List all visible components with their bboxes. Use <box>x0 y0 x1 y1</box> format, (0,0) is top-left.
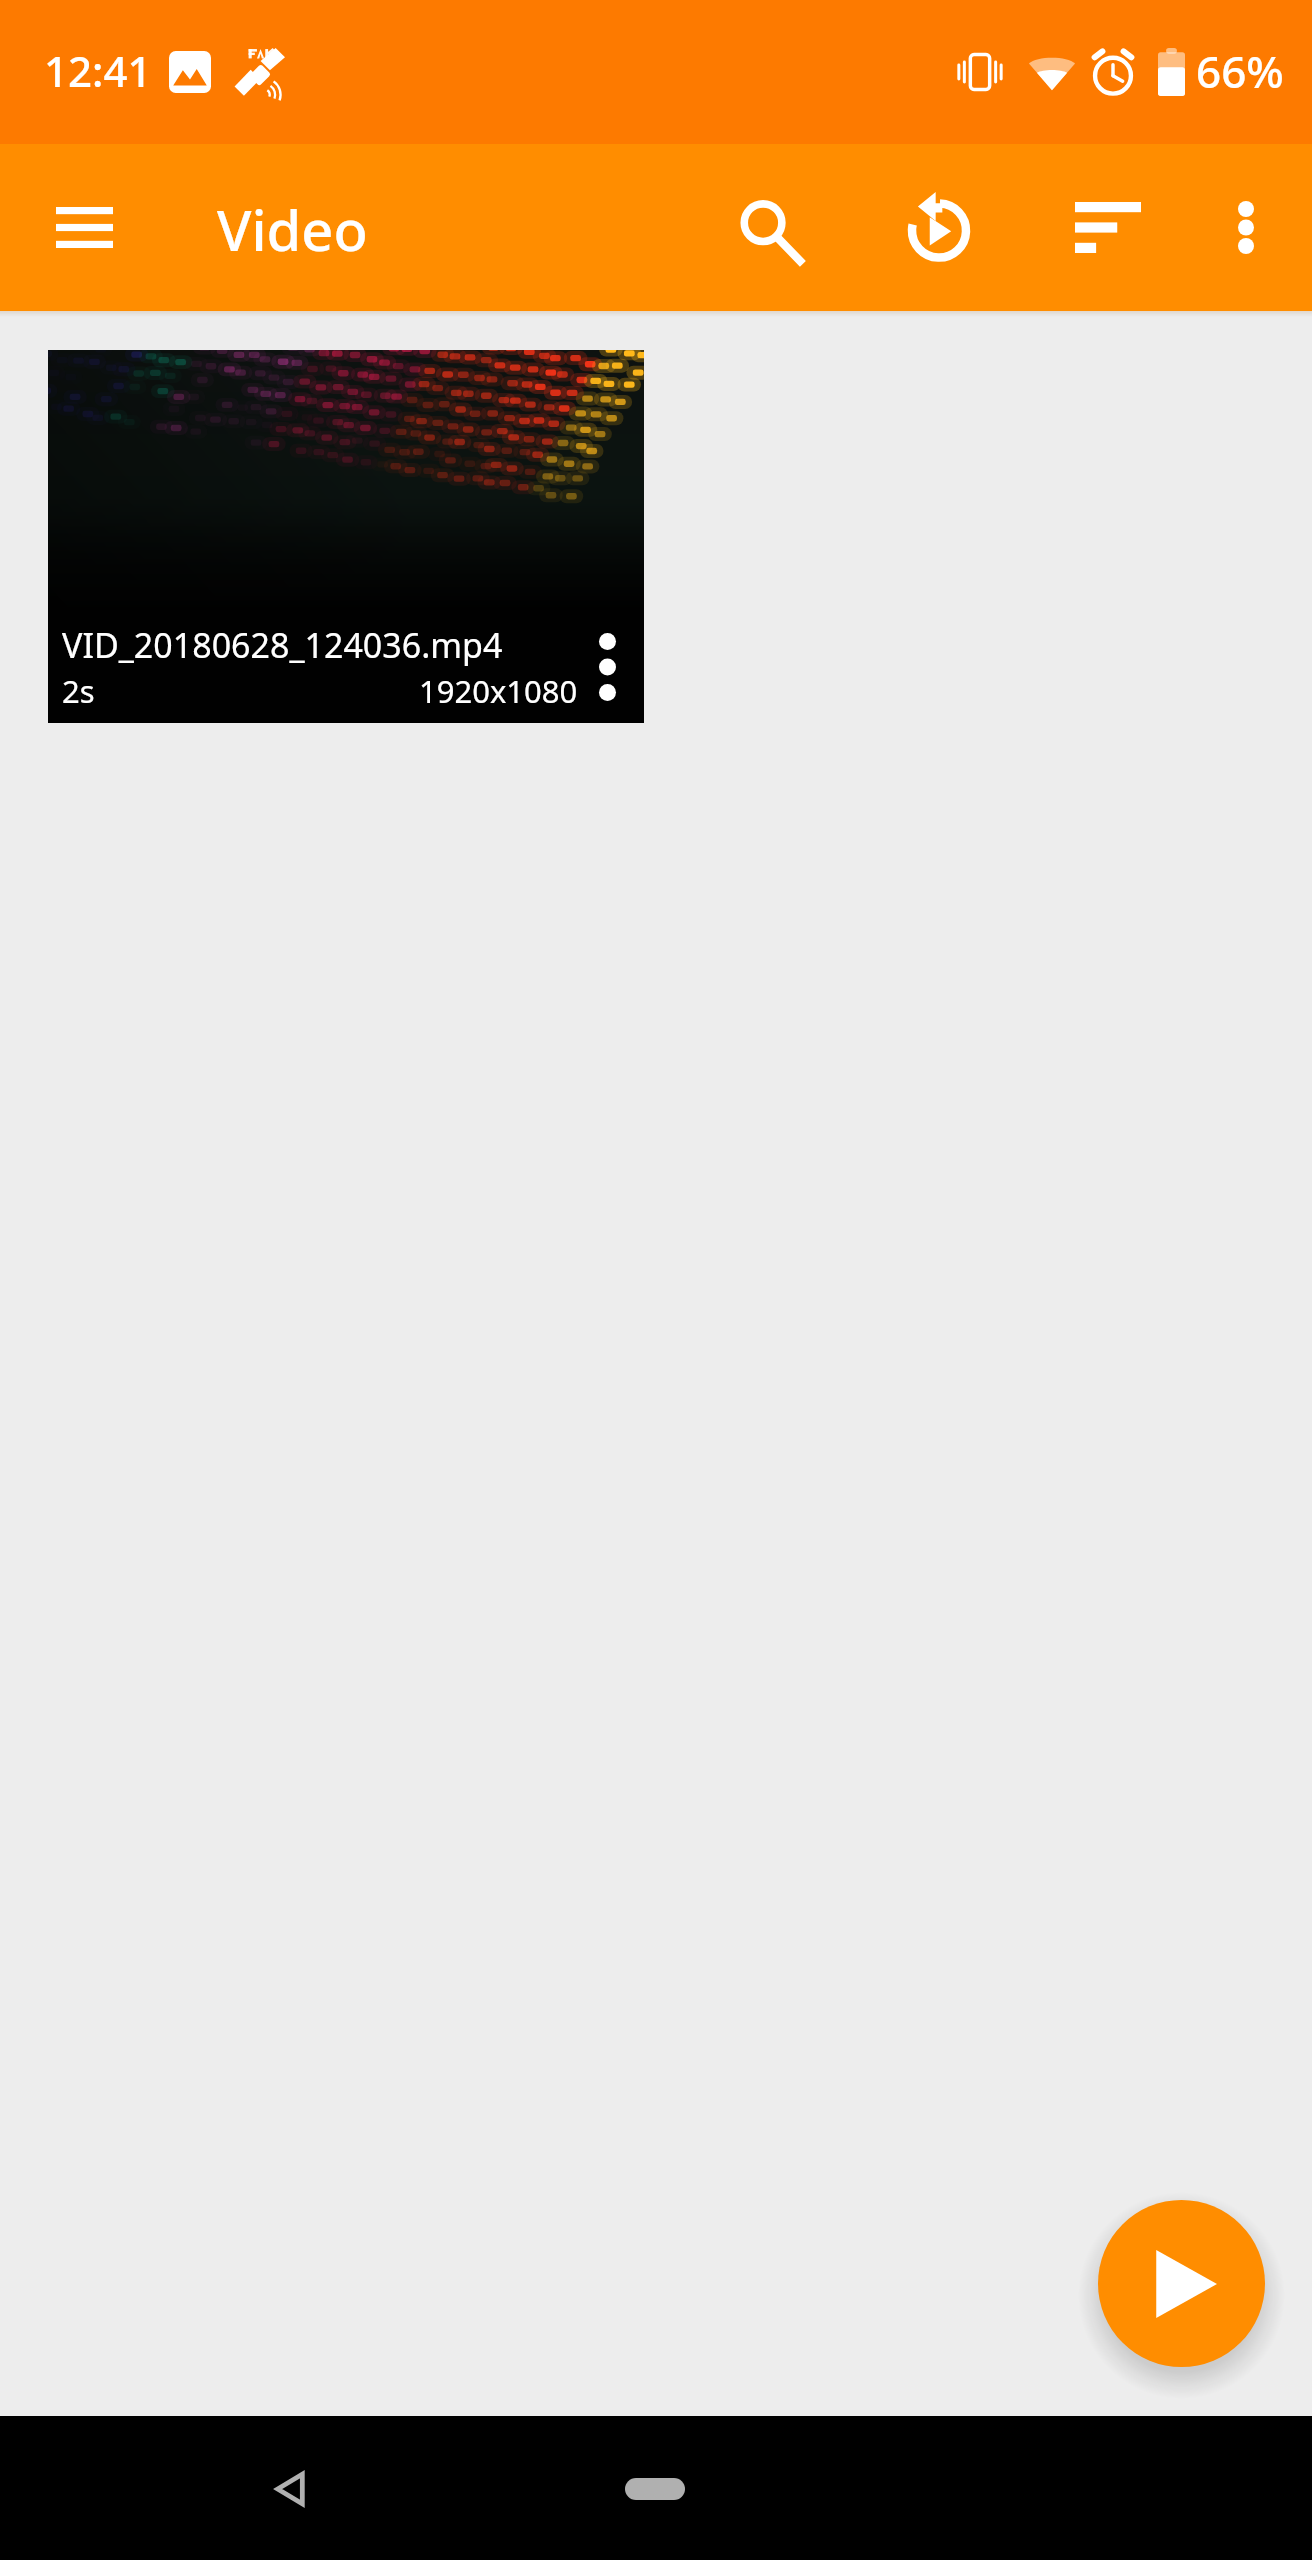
button[interactable]: Sort <box>1050 144 1166 311</box>
staticText: Video <box>217 191 368 267</box>
button[interactable]: Search <box>711 144 827 311</box>
button[interactable]: Navigation menu <box>26 144 140 311</box>
button[interactable]: More options for video <box>584 625 630 709</box>
button[interactable]: Home <box>599 2416 711 2560</box>
button[interactable]: Resume playback <box>881 144 997 311</box>
staticText: VID_20180628_124036.mp4 <box>62 622 503 668</box>
button[interactable]: More options <box>1188 144 1304 311</box>
staticText: 66% <box>1196 41 1284 101</box>
button[interactable]: Back <box>234 2416 346 2560</box>
staticText: 1920x1080 <box>419 670 578 712</box>
staticText: 12:41 <box>44 42 152 99</box>
staticText: 2s <box>62 670 95 712</box>
button[interactable]: VID_20180628_124036.mp4 <box>48 350 644 723</box>
button[interactable]: Play <box>1098 2200 1265 2367</box>
